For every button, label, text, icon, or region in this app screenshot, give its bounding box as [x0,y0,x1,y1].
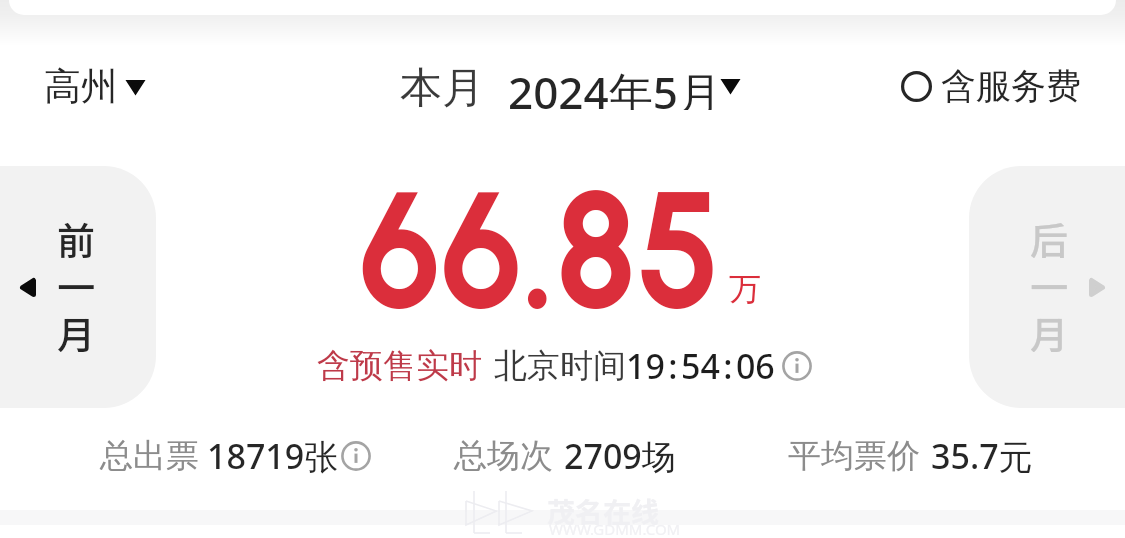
staticText: 19 : 54 : 06 [626,343,775,389]
staticText: 总出票 [100,435,199,477]
button[interactable]: 后一月 [969,166,1125,408]
button[interactable]: 总出票 [100,433,371,479]
staticText: 后 [1030,211,1069,258]
staticText: 总场次 [454,435,553,477]
staticText: 茂名在线 [547,491,660,532]
button[interactable]: 本月 [400,62,739,110]
staticText: 66.85 [359,151,722,348]
staticText: 本月 [400,62,484,110]
staticText: 35.7元 [931,433,1033,479]
button[interactable]: 前一月 [0,166,156,408]
button[interactable]: 平均票价 [788,433,1033,479]
staticText: 月 [1030,305,1069,352]
staticText: 含预售实时 [317,345,482,387]
staticText: 高州 [44,63,118,110]
staticText: WWW.GDMM.COM [549,519,681,538]
staticText: 含服务费 [941,64,1081,108]
staticText: 万 [729,269,761,309]
button[interactable]: 含服务费 [901,64,1081,108]
staticText: 平均票价 [788,435,920,477]
button[interactable]: 总场次 [454,433,676,479]
staticText: 前 [57,211,96,258]
staticText: 北京时间 [494,345,626,387]
staticText: 一 [57,258,96,305]
staticText: 月 [57,305,96,352]
staticText: 2024年5月 [508,62,722,110]
button[interactable]: 高州 [44,63,144,110]
staticText: 2709场 [564,433,676,479]
staticText: 一 [1030,258,1069,305]
staticText: 18719张 [207,433,339,479]
